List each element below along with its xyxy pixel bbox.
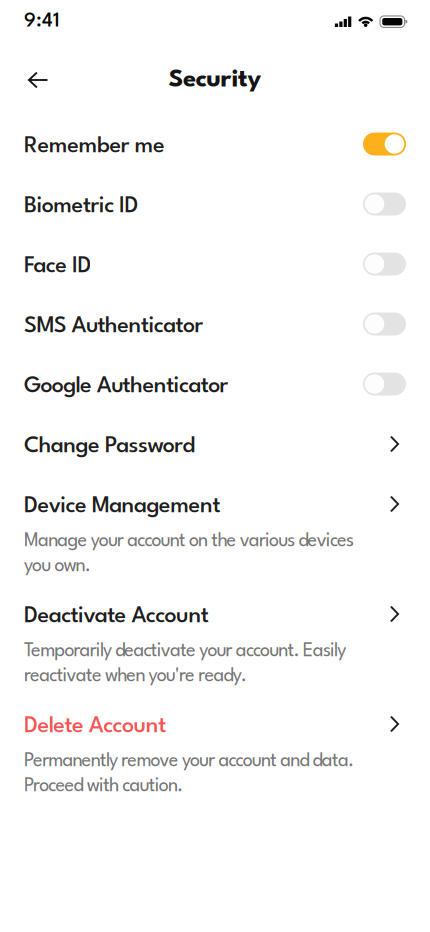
staticText: Manage your account on the various devic… bbox=[24, 532, 354, 551]
button[interactable]: Google Authenticator bbox=[0, 354, 430, 414]
button[interactable]: Back bbox=[17, 61, 57, 98]
staticText: reactivate when you're ready. bbox=[24, 667, 247, 686]
staticText: Remember me bbox=[24, 135, 165, 158]
staticText: Security bbox=[168, 68, 262, 92]
button[interactable]: Deactivate Account bbox=[0, 584, 430, 690]
button[interactable]: Device Management bbox=[0, 474, 430, 580]
staticText: Permanently remove your account and data… bbox=[24, 752, 354, 771]
button[interactable]: Delete Account bbox=[0, 694, 430, 800]
staticText: Temporarily deactivate your account. Eas… bbox=[24, 642, 346, 661]
button[interactable]: Face ID bbox=[0, 234, 430, 294]
staticText: Proceed with caution. bbox=[24, 777, 183, 796]
button[interactable]: Change Password bbox=[0, 414, 430, 474]
staticText: SMS Authenticator bbox=[24, 315, 203, 338]
button[interactable]: Remember me bbox=[0, 114, 430, 174]
button[interactable]: Biometric ID bbox=[0, 174, 430, 234]
staticText: Biometric ID bbox=[24, 195, 138, 218]
staticText: Change Password bbox=[24, 435, 196, 458]
staticText: Face ID bbox=[24, 255, 91, 278]
staticText: 9:41 bbox=[24, 12, 60, 31]
staticText: Google Authenticator bbox=[24, 375, 229, 398]
staticText: Device Management bbox=[24, 495, 220, 518]
button[interactable]: SMS Authenticator bbox=[0, 294, 430, 354]
staticText: Deactivate Account bbox=[24, 605, 209, 628]
staticText: you own. bbox=[24, 557, 91, 576]
staticText: Delete Account bbox=[24, 715, 166, 738]
